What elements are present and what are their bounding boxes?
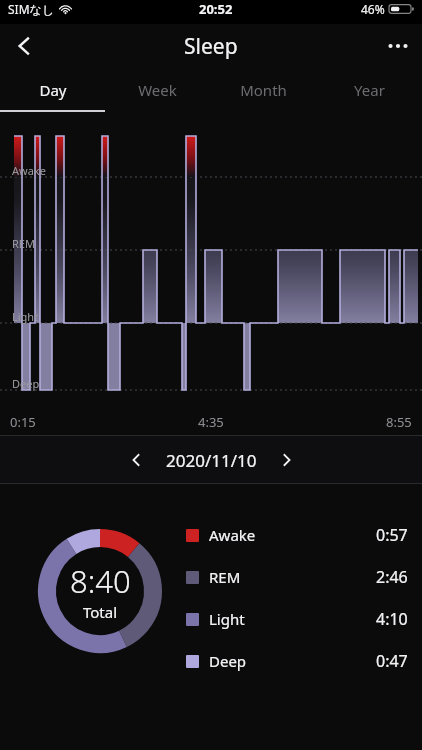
staticText: Awake <box>209 525 256 545</box>
staticText: Awake <box>12 163 46 178</box>
button[interactable]: REM <box>186 556 408 598</box>
button[interactable]: Next day <box>267 440 307 480</box>
staticText: Deep <box>209 651 247 671</box>
button[interactable]: Deep <box>186 640 408 682</box>
staticText: 8:40 <box>70 560 131 602</box>
button[interactable]: Light <box>186 598 408 640</box>
staticText: 4:10 <box>376 608 408 630</box>
staticText: 4:35 <box>198 413 224 431</box>
staticText: Light <box>12 309 39 324</box>
button[interactable]: Awake <box>186 514 408 556</box>
staticText: Year <box>354 80 385 100</box>
staticText: REM <box>12 236 35 251</box>
button[interactable]: Month <box>210 68 316 112</box>
button[interactable]: Previous day <box>116 440 156 480</box>
staticText: 20:52 <box>199 0 233 18</box>
staticText: REM <box>209 567 241 587</box>
staticText: 2:46 <box>376 566 408 588</box>
button[interactable]: Back <box>0 24 48 68</box>
staticText: Month <box>240 80 287 100</box>
staticText: 0:15 <box>10 413 36 431</box>
staticText: Total <box>83 602 118 622</box>
staticText: Sleep <box>184 32 238 61</box>
staticText: SIMなし <box>8 1 55 17</box>
staticText: Deep <box>12 376 40 391</box>
staticText: Week <box>138 80 177 100</box>
staticText: 0:57 <box>376 524 408 546</box>
button[interactable]: 8:40 <box>38 529 162 653</box>
staticText: Day <box>39 80 67 100</box>
staticText: Light <box>209 609 245 629</box>
button[interactable]: More options <box>374 24 422 68</box>
staticText: 0:47 <box>376 650 408 672</box>
button[interactable]: Year <box>316 68 422 112</box>
button[interactable]: 2020/11/10 <box>166 449 257 472</box>
staticText: 46% <box>361 1 385 17</box>
button[interactable]: Day <box>0 68 105 112</box>
button[interactable]: Week <box>105 68 210 112</box>
staticText: 8:55 <box>386 413 412 431</box>
